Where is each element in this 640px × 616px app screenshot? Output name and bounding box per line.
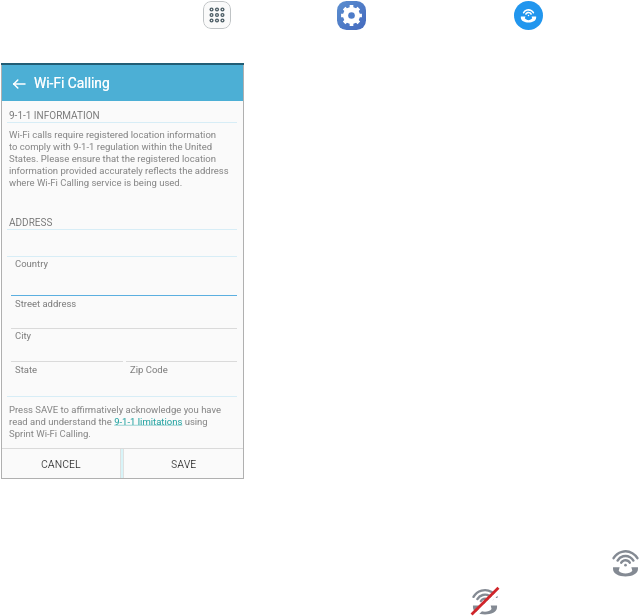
staticText: City (15, 330, 32, 341)
button[interactable]: State (9, 364, 236, 388)
staticText: Wi-Fi calls require registered location … (9, 129, 229, 188)
staticText: Wi-Fi Calling (34, 75, 110, 91)
staticText: State (15, 364, 38, 375)
button[interactable]: SAVE (124, 449, 244, 479)
button[interactable]: Street address (9, 298, 236, 322)
button[interactable]: Wi-Fi Calling (611, 547, 640, 576)
staticText: CANCEL (41, 458, 81, 470)
button[interactable]: Apps (203, 1, 231, 29)
button[interactable]: Wi-Fi Calling (514, 1, 543, 30)
button[interactable]: Wi-Fi Calling off (471, 586, 499, 614)
staticText: Zip Code (130, 364, 168, 375)
staticText: SAVE (171, 458, 197, 470)
staticText: Street address (15, 298, 77, 309)
staticText: ADDRESS (9, 217, 53, 229)
button[interactable]: Zip Code (126, 364, 236, 388)
staticText: 9-1-1 INFORMATION (9, 110, 100, 122)
staticText: Press SAVE to affirmatively acknowledge … (9, 404, 222, 439)
staticText: Country (15, 258, 48, 269)
button[interactable]: Country (9, 258, 236, 282)
button[interactable]: Back (7, 72, 30, 95)
button[interactable]: Settings (337, 1, 366, 30)
button[interactable]: City (9, 330, 236, 354)
button[interactable]: CANCEL (1, 449, 120, 479)
